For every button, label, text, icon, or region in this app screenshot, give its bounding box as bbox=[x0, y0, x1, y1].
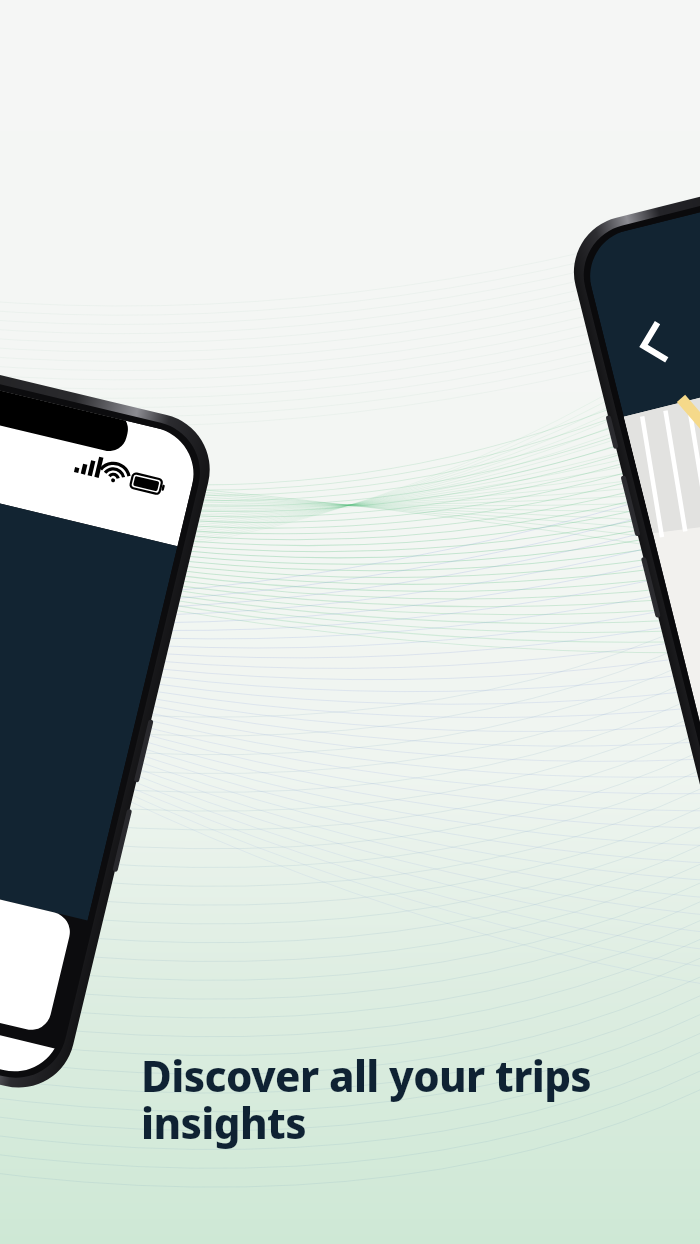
button[interactable]: Discover all your trips insights onboard… bbox=[0, 0, 700, 1244]
